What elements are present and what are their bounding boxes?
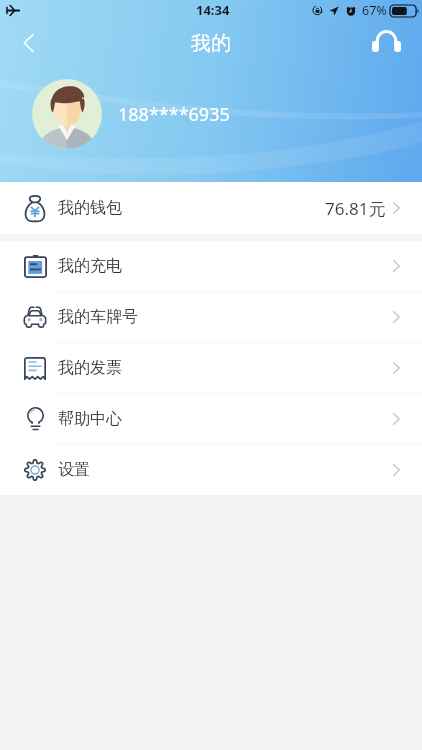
staticText: 帮助中心 [58, 409, 122, 429]
staticText: 76.81元 [325, 197, 386, 220]
staticText: 我的车牌号 [58, 307, 138, 327]
staticText: 我的 [191, 31, 231, 56]
button[interactable]: 设置 [0, 445, 422, 495]
staticText: 我的钱包 [58, 198, 122, 218]
staticText: 67% [362, 2, 387, 19]
button[interactable]: 我的车牌号 [0, 292, 422, 342]
button[interactable]: Back [10, 25, 46, 61]
button[interactable]: Customer service [368, 25, 404, 61]
button[interactable]: 帮助中心 [0, 394, 422, 444]
button[interactable]: Avatar [32, 79, 102, 149]
staticText: 设置 [58, 460, 90, 480]
staticText: 我的充电 [58, 256, 122, 276]
staticText: 我的发票 [58, 358, 122, 378]
button[interactable]: 我的钱包 [0, 182, 422, 234]
staticText: 14:34 [196, 1, 230, 19]
button[interactable]: 我的充电 [0, 241, 422, 291]
button[interactable]: 我的发票 [0, 343, 422, 393]
staticText: 188****6935 [118, 102, 230, 127]
